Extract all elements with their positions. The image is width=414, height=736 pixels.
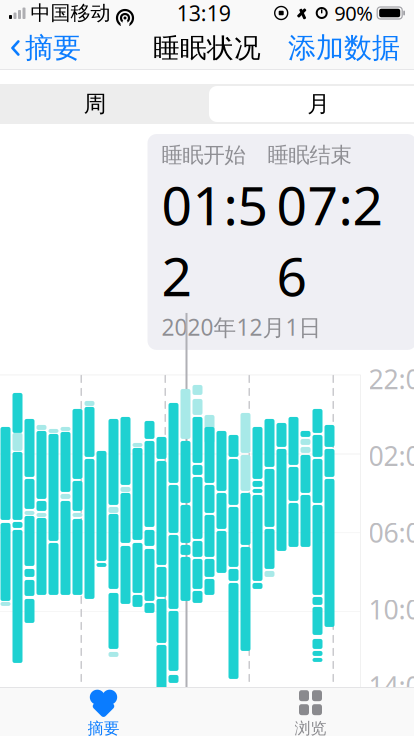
staticText: 13:19 — [177, 0, 231, 27]
staticText: 02:00 — [368, 438, 414, 473]
staticText: 周 — [84, 90, 107, 118]
staticText: 07:26 — [276, 169, 383, 311]
staticText: 8日 — [0, 680, 37, 714]
staticText: 睡眠状况 — [153, 32, 261, 64]
staticText: 摘要 — [87, 719, 119, 736]
staticText: 15日 — [82, 680, 135, 714]
staticText: 01:52 — [161, 169, 268, 311]
staticText: 2020年12月1日 — [161, 312, 321, 342]
staticText: 摘要 — [25, 31, 81, 65]
staticText: 29日 — [250, 680, 303, 714]
staticText: 06:00 — [368, 515, 414, 550]
staticText: 添加数据 — [288, 31, 400, 65]
staticText: 中国移动 — [30, 1, 110, 25]
button[interactable]: 摘要 — [0, 25, 81, 71]
staticText: 睡眠开始 — [161, 142, 245, 168]
staticText: 22日 — [166, 680, 219, 714]
staticText: 6日 — [334, 680, 373, 714]
staticText: 浏览 — [294, 719, 326, 736]
button[interactable]: 月 — [207, 84, 414, 124]
button[interactable]: 摘要 — [0, 685, 207, 736]
staticText: 睡眠结束 — [267, 142, 351, 168]
staticText: 22:00 — [368, 361, 414, 397]
staticText: 90% — [334, 0, 373, 26]
button[interactable]: 浏览 — [207, 685, 414, 736]
button[interactable]: 添加数据 — [288, 25, 414, 71]
staticText: 月 — [307, 90, 330, 118]
button[interactable]: 周 — [0, 86, 207, 122]
button[interactable]: 睡眠定时 — [0, 733, 414, 736]
staticText: 10:00 — [368, 591, 414, 627]
staticText: 14:00 — [368, 668, 414, 704]
